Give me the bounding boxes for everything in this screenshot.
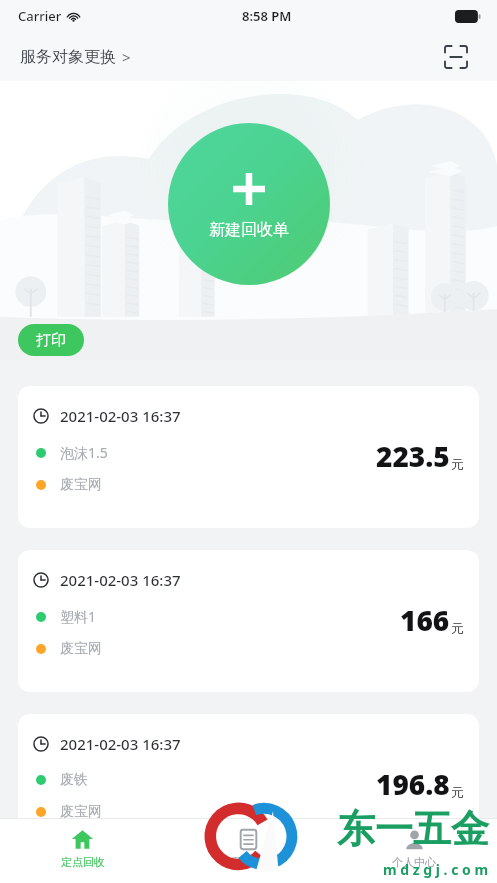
staticText: 预约单 [232,855,265,869]
staticText: > [122,47,131,67]
button[interactable]: 打印 [18,324,84,356]
staticText: 废宝网 [60,640,102,658]
staticText: 8:58 PM [242,7,292,25]
staticText: 废宝网 [60,476,102,494]
staticText: 新建回收单 [209,220,289,240]
button[interactable]: 新建回收单 [168,123,330,285]
staticText: 废铁 [60,771,88,789]
staticText: 223.5 [376,437,450,475]
staticText: 元 [451,456,464,472]
staticText: 2021-02-03 16:37 [60,570,181,590]
staticText: 废宝网 [60,803,102,818]
staticText: 个人中心 [392,855,436,869]
button[interactable]: 个人中心 [331,819,497,883]
staticText: 定点回收 [61,855,105,869]
button[interactable]: 2021-02-03 16:37 [18,714,479,818]
button[interactable]: Scan QR code [441,42,471,72]
staticText: 塑料1 [60,607,97,626]
button[interactable]: 预约单 [165,819,331,883]
staticText: 服务对象更换 [20,47,116,67]
staticText: 元 [451,620,464,636]
staticText: 泡沫1.5 [60,443,108,462]
button[interactable]: 2021-02-03 16:37 [18,386,479,528]
button[interactable]: 服务对象更换 [0,41,141,73]
staticText: Carrier [18,7,62,25]
staticText: m d z g j . c o m [383,860,489,879]
staticText: 196.8 [376,765,450,803]
staticText: 2021-02-03 16:37 [60,406,181,426]
staticText: 元 [451,784,464,800]
staticText: 打印 [36,331,66,350]
button[interactable]: 定点回收 [0,819,165,883]
staticText: 166 [400,601,450,639]
button[interactable]: 2021-02-03 16:37 [18,550,479,692]
staticText: 2021-02-03 16:37 [60,734,181,754]
staticText: 东一五金 [337,805,489,853]
